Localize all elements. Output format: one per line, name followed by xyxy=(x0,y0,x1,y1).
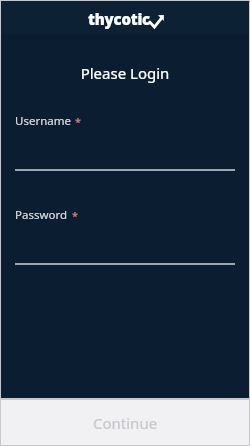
button[interactable]: Password xyxy=(15,207,235,265)
staticText: * xyxy=(72,208,78,223)
staticText: Password xyxy=(15,207,68,223)
staticText: * xyxy=(75,114,81,129)
button[interactable]: Continue xyxy=(1,400,249,445)
staticText: Please Login xyxy=(1,63,249,83)
staticText: Continue xyxy=(93,413,158,433)
staticText: Username xyxy=(15,113,71,129)
staticText: thycotic xyxy=(88,9,151,29)
button[interactable]: Username xyxy=(15,113,235,171)
